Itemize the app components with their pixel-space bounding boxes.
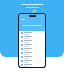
button[interactable] [19, 55, 45, 59]
button[interactable] [19, 35, 45, 39]
button[interactable] [19, 51, 45, 55]
staticText: Run your business [21, 2, 43, 5]
staticText: from anywhere [26, 6, 39, 8]
button[interactable] [19, 31, 45, 35]
other: Sparkle [32, 9, 37, 14]
staticText: Business Dashboard [23, 24, 42, 27]
button[interactable] [19, 47, 45, 51]
button[interactable] [19, 59, 45, 63]
staticText: 9:41 [21, 18, 25, 20]
button[interactable] [19, 43, 45, 47]
button[interactable] [19, 39, 45, 43]
button[interactable] [19, 63, 45, 67]
